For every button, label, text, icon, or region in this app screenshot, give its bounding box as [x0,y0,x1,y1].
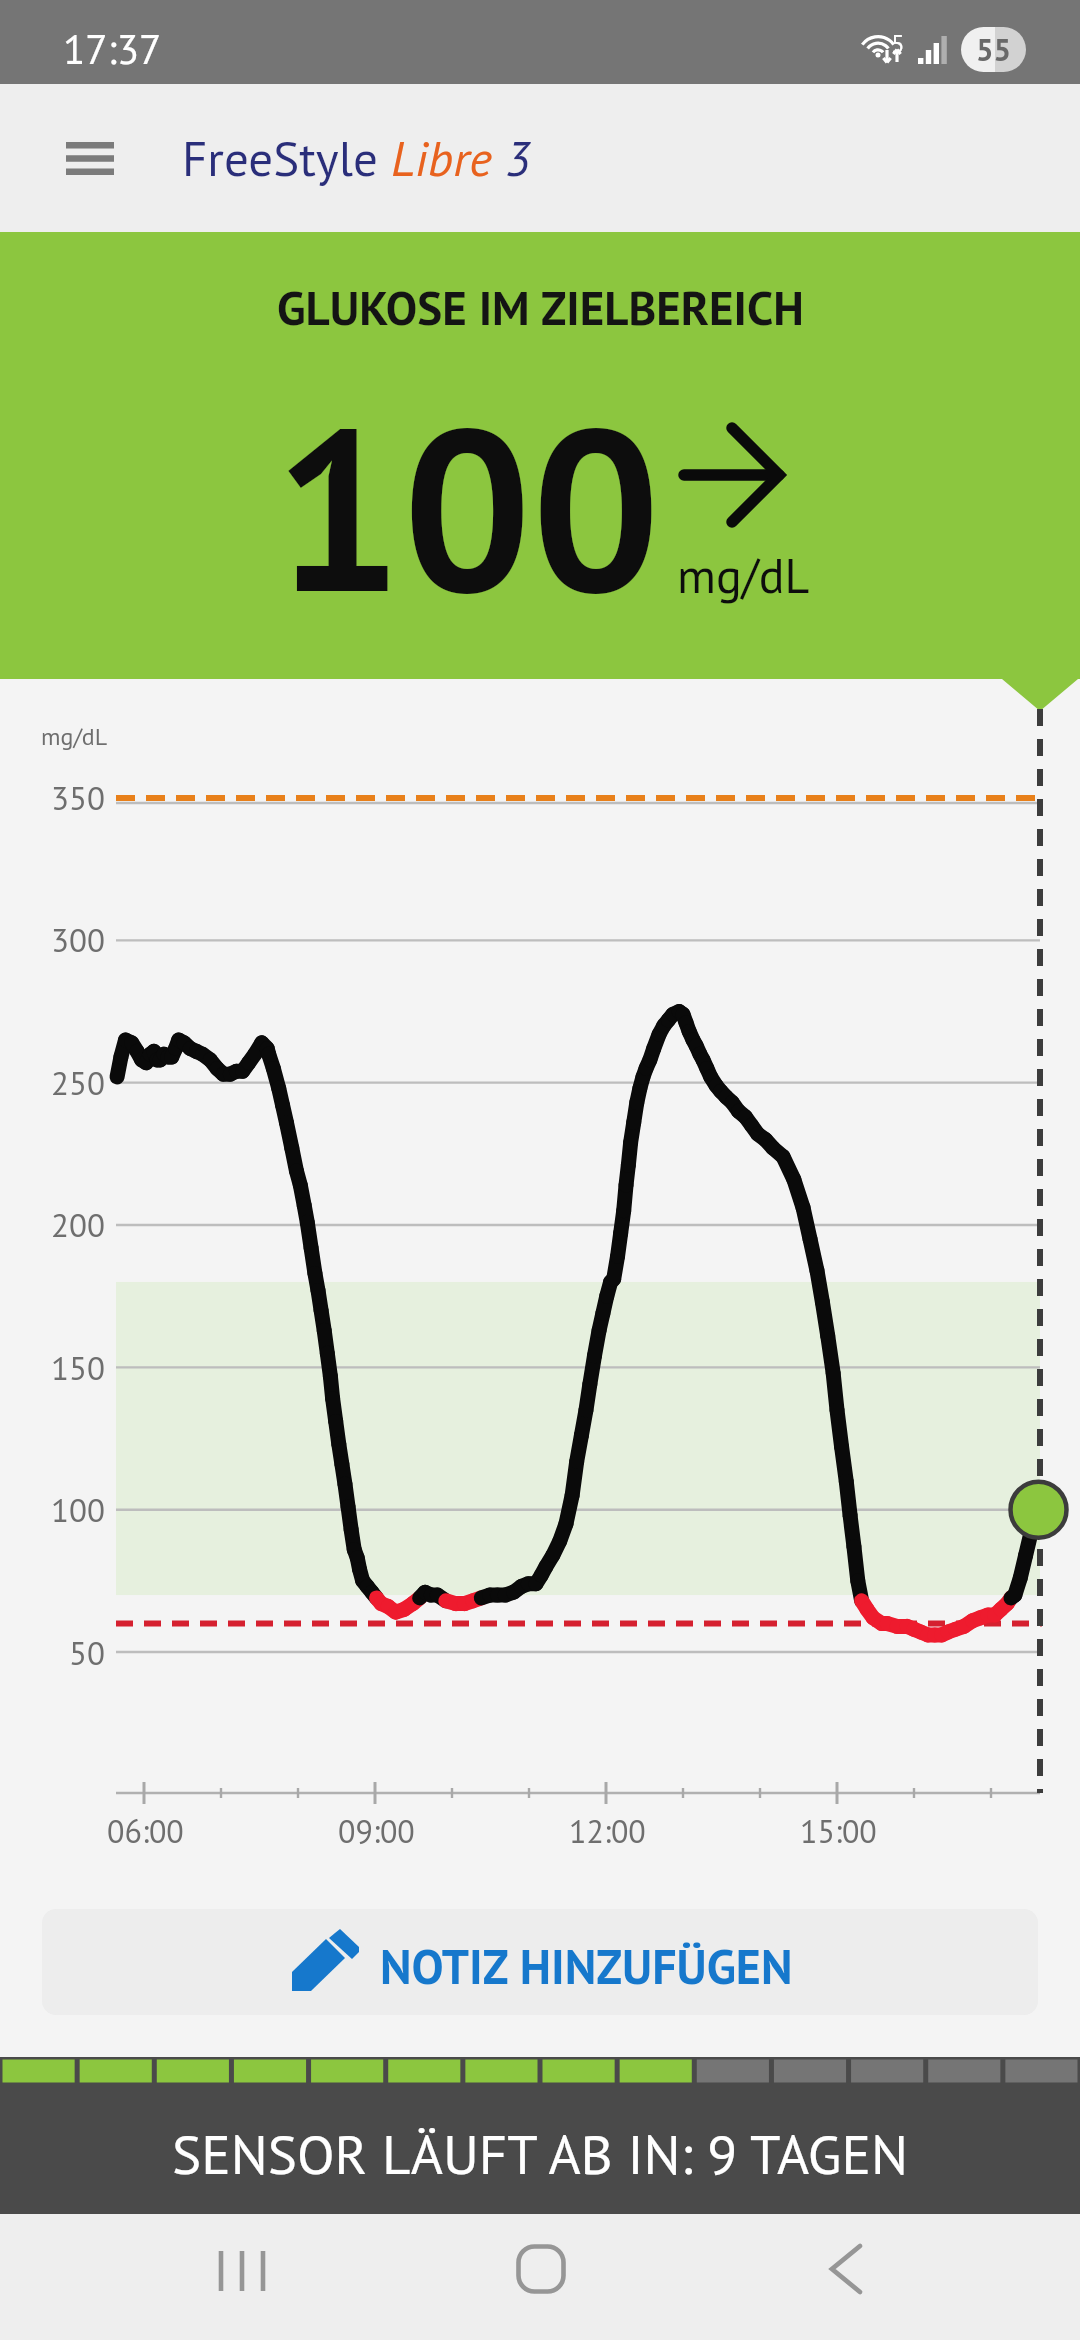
staticText: SENSOR LÄUFT AB IN: 9 TAGEN [172,2118,908,2189]
staticText: 150 [51,1346,105,1389]
button[interactable]: Recent apps [181,2211,301,2331]
staticText: 200 [51,1203,105,1246]
staticText: 350 [51,776,105,819]
staticText: 06:00 [107,1810,184,1851]
button[interactable]: SENSOR LÄUFT AB IN: 9 TAGEN [0,2057,1080,2214]
staticText: 100 [274,360,661,654]
staticText: 100 [51,1488,105,1531]
staticText: NOTIZ HINZUFÜGEN [380,1935,793,1997]
staticText: 15:00 [800,1810,877,1851]
staticText: 5 [891,28,905,60]
staticText: 17:37 [63,22,162,75]
button[interactable]: Back [786,2209,906,2329]
staticText: FreeStyle Libre 3 [182,126,531,189]
staticText: 300 [51,918,105,961]
button[interactable]: Menu [30,98,150,218]
staticText: GLUKOSE IM ZIELBEREICH [277,277,804,338]
staticText: 250 [51,1061,105,1104]
staticText: 09:00 [338,1810,415,1851]
staticText: 50 [69,1631,105,1674]
staticText: mg/dL [677,544,810,606]
staticText: 55 [976,29,1012,69]
staticText: 12:00 [569,1810,646,1851]
staticText: mg/dL [41,721,108,752]
button[interactable]: NOTIZ HINZUFÜGEN [42,1909,1038,2015]
button[interactable]: Home [481,2209,601,2329]
